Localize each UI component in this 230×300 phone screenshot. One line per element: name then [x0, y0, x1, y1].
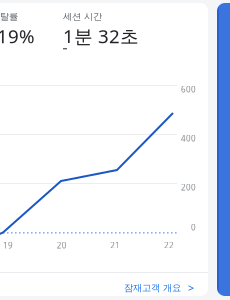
staticText: 400	[181, 133, 196, 144]
staticText: 1분 32초	[63, 24, 139, 48]
staticText: 0	[191, 222, 196, 233]
staticText: >	[188, 281, 194, 295]
staticText: 세션 시간	[63, 11, 102, 22]
staticText: 22	[164, 240, 174, 251]
staticText: 19	[3, 240, 13, 251]
staticText: 21	[110, 240, 120, 251]
staticText: 방문 이탈률	[0, 11, 18, 22]
staticText: 600	[181, 84, 196, 95]
staticText: 200	[181, 182, 196, 193]
staticText: 20	[57, 240, 67, 251]
staticText: 잠재고객 개요	[124, 282, 181, 294]
button[interactable]: 잠재고객 개요	[0, 273, 208, 295]
staticText: 49.19%	[0, 24, 35, 48]
